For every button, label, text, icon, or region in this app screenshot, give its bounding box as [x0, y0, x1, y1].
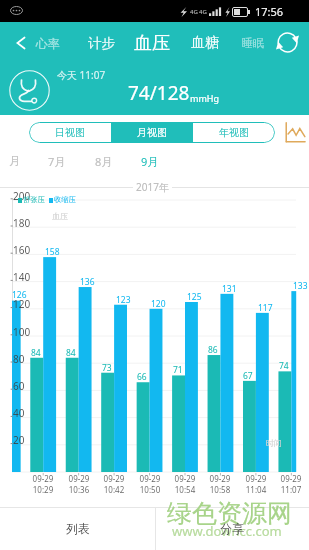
staticText: 86: [208, 344, 218, 356]
staticText: 74/128: [128, 80, 190, 106]
staticText: 计步: [88, 35, 115, 52]
staticText: 80: [13, 352, 25, 366]
staticText: 131: [222, 283, 237, 295]
staticText: 4G: [199, 8, 207, 16]
staticText: 74: [279, 360, 289, 372]
button[interactable]: 心率: [36, 28, 60, 58]
staticText: 160: [13, 243, 31, 257]
staticText: 绿色资源网: [167, 498, 292, 529]
button[interactable]: 月视图: [111, 122, 193, 143]
button[interactable]: 列表: [0, 507, 155, 550]
staticText: 09-29 11:04: [238, 473, 274, 495]
staticText: 09-29 10:54: [167, 473, 203, 495]
staticText: mmHg: [190, 92, 220, 104]
button[interactable]: 血糖: [191, 28, 219, 58]
staticText: 09-29 10:42: [96, 473, 132, 495]
button[interactable]: 7月: [48, 154, 66, 169]
button[interactable]: 日视图: [29, 122, 111, 143]
staticText: 血压: [52, 211, 68, 221]
staticText: 67: [243, 370, 253, 382]
staticText: 睡眠: [242, 36, 264, 50]
staticText: 4G: [190, 8, 198, 16]
staticText: 73: [102, 362, 112, 374]
staticText: 125: [187, 291, 202, 303]
button[interactable]: 睡眠: [242, 28, 264, 58]
staticText: 140: [13, 270, 31, 284]
staticText: 60: [13, 379, 25, 393]
staticText: 71: [173, 364, 183, 376]
staticText: 117: [258, 302, 273, 314]
button[interactable]: 8月: [95, 154, 113, 169]
staticText: 158: [45, 246, 60, 258]
staticText: 84: [31, 347, 41, 359]
staticText: 09-29 10:58: [202, 473, 238, 495]
staticText: 7月: [48, 154, 66, 169]
staticText: 今天 11:07: [57, 68, 106, 82]
staticText: 200: [13, 189, 31, 203]
button[interactable]: 年视图: [193, 122, 275, 143]
staticText: 分享: [220, 521, 244, 536]
button[interactable]: 血压: [134, 28, 170, 58]
staticText: 日视图: [55, 126, 85, 139]
staticText: 心率: [36, 36, 60, 51]
staticText: 126: [12, 289, 27, 301]
staticText: 100: [13, 325, 31, 339]
staticText: 180: [13, 216, 31, 230]
staticText: 123: [116, 294, 131, 306]
staticText: 17:56: [255, 4, 284, 19]
staticText: 09-29 10:50: [132, 473, 168, 495]
button[interactable]: 9月: [141, 154, 159, 169]
staticText: 84: [66, 347, 76, 359]
staticText: 136: [80, 276, 95, 288]
staticText: 2017年: [136, 180, 169, 194]
button[interactable]: 分享: [155, 507, 309, 550]
button[interactable]: 月: [9, 154, 20, 168]
button[interactable]: Line chart view: [283, 121, 306, 144]
staticText: 收缩压: [54, 195, 76, 204]
staticText: 09-29 10:29: [25, 473, 61, 495]
staticText: 120: [13, 297, 31, 311]
button[interactable]: Back: [11, 32, 31, 54]
staticText: www.downcc.com: [172, 522, 282, 540]
staticText: 血糖: [191, 34, 219, 52]
staticText: 血压: [134, 32, 170, 55]
staticText: 8月: [95, 154, 113, 169]
button[interactable]: 计步: [88, 28, 115, 58]
staticText: 月: [9, 154, 20, 168]
staticText: 列表: [66, 521, 90, 536]
staticText: 09-29 11:07: [273, 473, 309, 495]
button[interactable]: Refresh: [276, 31, 299, 54]
staticText: 40: [13, 406, 25, 420]
staticText: 时间: [266, 438, 282, 448]
staticText: 月视图: [137, 126, 167, 139]
staticText: 120: [151, 298, 166, 310]
staticText: 09-29 10:36: [61, 473, 97, 495]
staticText: 133: [293, 280, 308, 292]
staticText: 20: [13, 433, 25, 447]
staticText: 舒张压: [23, 195, 45, 204]
staticText: 66: [137, 371, 147, 383]
staticText: 年视图: [219, 126, 249, 139]
staticText: 9月: [141, 154, 159, 169]
